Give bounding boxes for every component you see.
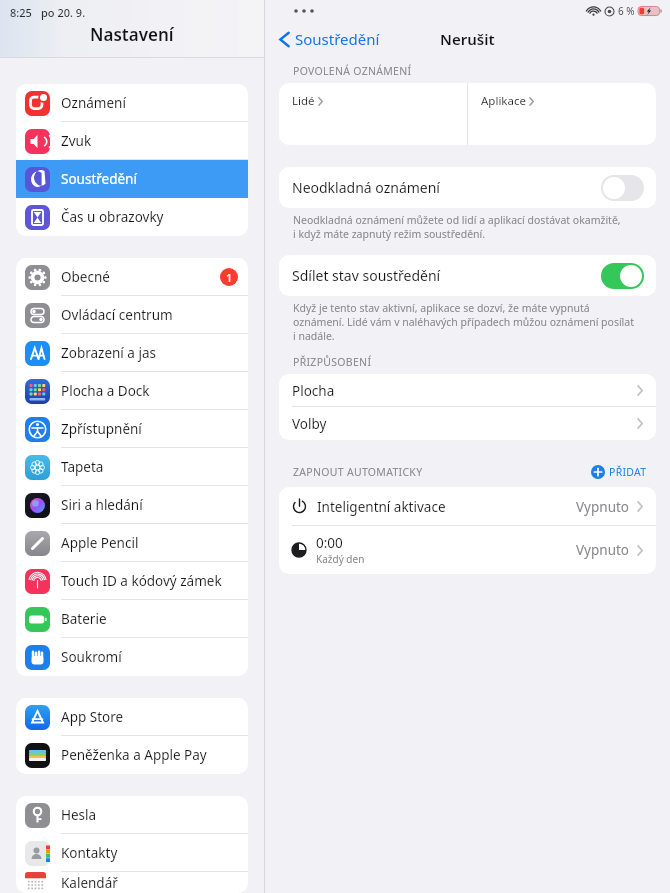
staticText: 1 [226,270,233,285]
staticText: Siri a hledání [61,496,143,514]
staticText: Aplikace [481,93,526,109]
staticText: po 20. 9. [41,5,86,20]
button[interactable]: Neodkladná oznámení [279,167,656,208]
staticText: Vypnuto [576,498,630,516]
button[interactable]: Zobrazení a jas [16,334,248,372]
staticText: Oznámení [61,94,126,112]
button[interactable]: Aplikace [468,83,656,145]
staticText: Touch ID a kódový zámek [61,572,222,590]
button[interactable]: Kontakty [16,834,248,872]
staticText: Nastavení [90,23,174,46]
staticText: 0:00 [316,534,343,552]
button[interactable]: Touch ID a kódový zámek [16,562,248,600]
button[interactable]: Plocha [279,374,656,407]
staticText: Apple Pencil [61,534,139,552]
button[interactable]: Ovládací centrum [16,296,248,334]
staticText: Kontakty [61,844,118,862]
button[interactable]: Plocha a Dock [16,372,248,410]
staticText: Volby [292,415,327,433]
button[interactable]: Tapeta [16,448,248,486]
button[interactable]: Baterie [16,600,248,638]
staticText: Soukromí [61,648,122,666]
staticText: Tapeta [61,458,104,476]
staticText: Sdílet stav soustředění [292,266,441,285]
staticText: Nerušit [440,29,495,49]
button[interactable]: Peněženka a Apple Pay [16,736,248,774]
button[interactable]: Soustředění [276,26,383,52]
button[interactable]: App Store [16,698,248,736]
staticText: Hesla [61,806,97,824]
staticText: Když je tento stav aktivní, aplikace se … [293,301,635,343]
staticText: ZAPNOUT AUTOMATICKY [293,465,423,479]
staticText: Vypnuto [576,541,630,559]
button[interactable]: Sdílet stav soustředění [279,255,656,296]
button[interactable]: Apple Pencil [16,524,248,562]
button[interactable]: Oznámení [16,84,248,122]
staticText: Kalendář [61,874,118,892]
staticText: Neodkladná oznámení můžete od lidí a apl… [293,213,621,241]
button[interactable]: Kalendář [16,872,248,893]
button[interactable]: PŘIDAT [588,462,650,482]
staticText: Plocha a Dock [61,382,150,400]
staticText: PŘIZPŮSOBENÍ [293,355,372,369]
staticText: App Store [61,708,124,726]
button[interactable]: Čas u obrazovky [16,198,248,236]
staticText: Zvuk [61,132,92,150]
button[interactable]: Soustředění [16,160,248,198]
staticText: Soustředění [295,29,380,49]
staticText: Obecné [61,268,110,286]
staticText: PŘIDAT [609,465,647,479]
staticText: Čas u obrazovky [61,208,164,226]
button[interactable]: Obecné [16,258,248,296]
button[interactable]: Zvuk [16,122,248,160]
button[interactable]: 0:00 [279,526,656,574]
staticText: Inteligentní aktivace [317,498,446,516]
button[interactable]: Siri a hledání [16,486,248,524]
staticText: Lidé [292,93,315,109]
button[interactable]: Hesla [16,796,248,834]
button[interactable]: Lidé [279,83,467,145]
staticText: Každý den [316,552,365,566]
staticText: Plocha [292,382,335,400]
button[interactable]: Soukromí [16,638,248,676]
staticText: Peněženka a Apple Pay [61,746,207,764]
staticText: POVOLENÁ OZNÁMENÍ [293,64,412,78]
staticText: Zobrazení a jas [61,344,156,362]
staticText: Zpřístupnění [61,420,142,438]
button[interactable]: Zpřístupnění [16,410,248,448]
staticText: Ovládací centrum [61,306,173,324]
staticText: 6 % [618,4,635,18]
button[interactable]: Inteligentní aktivace [279,487,656,526]
staticText: Soustředění [61,170,137,188]
staticText: 8:25 [10,5,32,20]
staticText: Neodkladná oznámení [292,178,440,197]
staticText: Baterie [61,610,107,628]
button[interactable]: Volby [279,407,656,440]
